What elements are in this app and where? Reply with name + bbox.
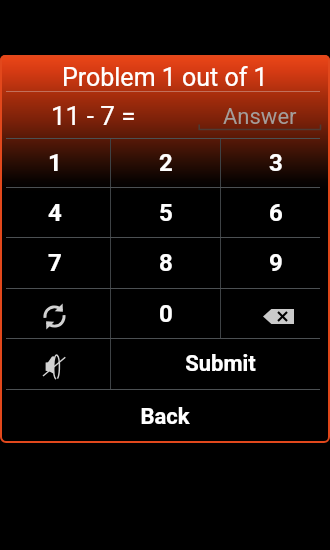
- button[interactable]: 4: [0, 188, 110, 237]
- staticText: 6: [269, 199, 283, 227]
- button[interactable]: Refresh: [0, 289, 110, 338]
- staticText: 8: [159, 249, 173, 277]
- staticText: 7: [48, 249, 62, 277]
- button[interactable]: Mute sound: [0, 339, 110, 389]
- staticText: 4: [48, 199, 62, 227]
- staticText: 9: [269, 249, 283, 277]
- button[interactable]: 8: [111, 238, 220, 288]
- button[interactable]: 5: [111, 188, 220, 237]
- button[interactable]: 9: [221, 238, 330, 288]
- staticText: 0: [159, 300, 173, 328]
- button[interactable]: 1: [0, 139, 110, 187]
- staticText: Answer: [223, 104, 297, 130]
- button[interactable]: 2: [111, 139, 220, 187]
- staticText: 5: [159, 199, 173, 227]
- button[interactable]: 3: [221, 139, 330, 187]
- button[interactable]: 6: [221, 188, 330, 237]
- button[interactable]: 7: [0, 238, 110, 288]
- staticText: Problem 1 out of 1: [62, 63, 268, 92]
- button[interactable]: Submit: [111, 339, 330, 389]
- button[interactable]: Answer: [196, 92, 324, 138]
- staticText: Submit: [185, 351, 256, 377]
- button[interactable]: 0: [111, 289, 220, 338]
- staticText: 11 - 7 =: [51, 101, 136, 131]
- staticText: 1: [48, 149, 62, 177]
- staticText: 2: [159, 149, 173, 177]
- staticText: Back: [140, 404, 190, 430]
- button[interactable]: Backspace: [221, 289, 330, 338]
- button[interactable]: Back: [0, 390, 330, 443]
- staticText: 3: [269, 149, 283, 177]
